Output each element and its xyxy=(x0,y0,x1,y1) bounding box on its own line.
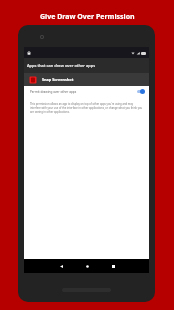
staticText: Permit drawing over other apps xyxy=(30,90,77,94)
staticText: Apps that can draw over other apps xyxy=(27,63,96,68)
staticText: Snap Screenshot xyxy=(42,77,74,82)
staticText: Give Draw Over Permission xyxy=(40,12,135,22)
button[interactable]: Back xyxy=(48,259,74,273)
staticText: This permission allows an app to display… xyxy=(30,102,143,114)
button[interactable]: Permit drawing over other apps xyxy=(24,86,149,94)
button[interactable]: Snap Screenshot xyxy=(24,73,149,86)
button[interactable]: Home xyxy=(74,259,100,273)
button[interactable]: Apps that can draw over other apps xyxy=(24,58,149,73)
button[interactable]: Recent apps xyxy=(100,259,126,273)
